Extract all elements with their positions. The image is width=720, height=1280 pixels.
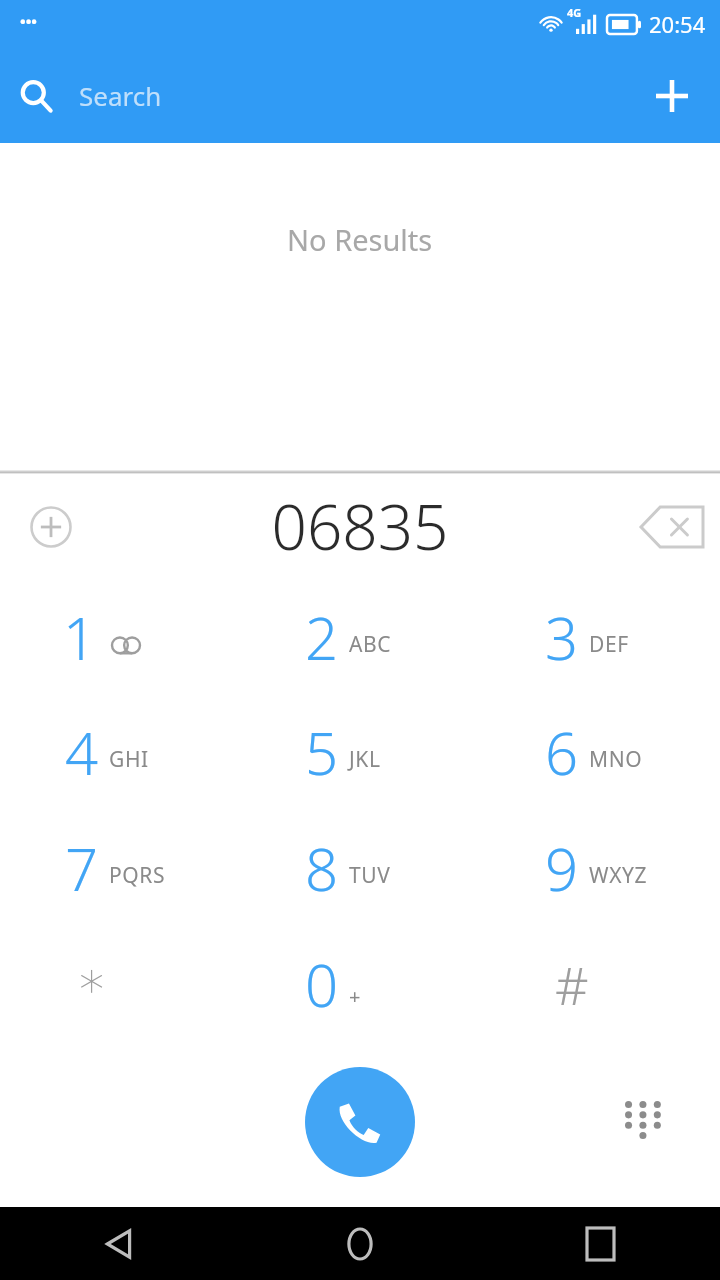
button[interactable]: 5	[240, 695, 480, 810]
staticText: JKL	[349, 745, 381, 774]
staticText: 9	[545, 829, 579, 908]
staticText: 4G	[567, 5, 582, 20]
staticText: 5	[305, 713, 339, 792]
staticText: 0	[305, 945, 339, 1024]
button[interactable]: Add contact	[632, 56, 712, 136]
button[interactable]: 4	[0, 695, 240, 810]
button[interactable]: 9	[480, 810, 720, 926]
staticText: 20:54	[649, 9, 706, 39]
staticText: 7	[65, 829, 99, 908]
staticText: 6	[545, 713, 579, 792]
button[interactable]: Backspace	[632, 487, 712, 567]
button[interactable]: 8	[240, 810, 480, 926]
button[interactable]: Add to contacts	[11, 487, 91, 567]
staticText: 3	[545, 598, 579, 677]
staticText: 8	[305, 829, 339, 908]
button[interactable]: Back	[0, 1207, 240, 1280]
button[interactable]: Recents	[480, 1207, 720, 1280]
button[interactable]: Call	[305, 1067, 415, 1177]
staticText: PQRS	[109, 861, 166, 890]
button[interactable]: ∗	[0, 926, 240, 1042]
staticText: #	[555, 949, 589, 1020]
staticText: Search	[79, 78, 162, 113]
staticText: WXYZ	[589, 861, 648, 890]
button[interactable]: 2	[240, 580, 480, 695]
button[interactable]: #	[480, 926, 720, 1042]
staticText: TUV	[349, 861, 391, 890]
button[interactable]: Show dialpad	[604, 1084, 680, 1160]
staticText: 1	[63, 598, 97, 677]
staticText: ∗	[76, 951, 108, 1009]
button[interactable]: 0	[240, 926, 480, 1042]
staticText: ABC	[349, 630, 392, 659]
staticText: +	[349, 983, 361, 1010]
button[interactable]: 6	[480, 695, 720, 810]
button[interactable]: Search	[0, 60, 72, 132]
button[interactable]: 1	[0, 580, 240, 695]
button[interactable]: 7	[0, 810, 240, 926]
staticText: DEF	[589, 630, 629, 659]
staticText: 2	[305, 598, 339, 677]
staticText: •••	[20, 11, 37, 31]
staticText: GHI	[109, 745, 149, 774]
staticText: MNO	[589, 745, 643, 774]
button[interactable]: 3	[480, 580, 720, 695]
staticText: 06835	[271, 484, 449, 568]
staticText: 4	[65, 713, 99, 792]
button[interactable]: Home	[240, 1207, 480, 1280]
staticText: No Results	[287, 220, 433, 259]
